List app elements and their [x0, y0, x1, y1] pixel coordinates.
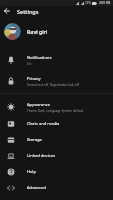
staticText: Theme Dark, Language System default	[27, 109, 84, 113]
staticText: Privacy	[27, 76, 41, 82]
button[interactable]: Chats and media	[0, 116, 113, 132]
button[interactable]: Advanced	[0, 180, 113, 196]
staticText: Chats and media	[27, 121, 60, 127]
staticText: Linked devices	[27, 153, 55, 159]
staticText: Appearance	[27, 102, 50, 108]
button[interactable]: Privacy	[0, 71, 113, 91]
staticText: Settings	[17, 8, 39, 15]
button[interactable]: Appearance	[0, 97, 113, 117]
staticText: Advanced	[27, 185, 46, 191]
staticText: Help	[27, 169, 36, 175]
staticText: 72%	[85, 1, 91, 5]
button[interactable]: Linked devices	[0, 148, 113, 164]
staticText: Notifications	[27, 55, 52, 61]
button[interactable]: Storage	[0, 132, 113, 148]
staticText: On	[27, 62, 32, 66]
button[interactable]	[3, 7, 11, 15]
staticText: Ravi giri	[27, 28, 48, 35]
button[interactable]: Ravi giri	[0, 18, 113, 45]
staticText: 2:09 PM	[99, 1, 111, 5]
button[interactable]: Help	[0, 164, 113, 180]
staticText: Storage	[27, 137, 42, 143]
staticText: Screen lock off, Registration lock off	[27, 83, 79, 87]
button[interactable]: Notifications	[0, 50, 113, 70]
